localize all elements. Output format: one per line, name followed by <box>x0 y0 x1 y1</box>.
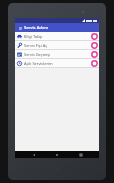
button[interactable]: Servis Geçmişi <box>15 50 99 58</box>
staticText: Bilgi Takip <box>24 34 91 39</box>
button[interactable]: Open navigation drawer <box>17 25 23 31</box>
button[interactable]: Home <box>52 151 62 158</box>
staticText: Açık Servislerim <box>24 61 91 66</box>
button[interactable]: Açık Servislerim <box>15 59 99 67</box>
staticText: Servis Adımı <box>24 25 48 31</box>
button[interactable]: Back <box>29 151 39 158</box>
button[interactable]: Recent apps <box>76 151 86 158</box>
staticText: Servis Geçmişi <box>24 52 91 57</box>
button[interactable]: Servis Fişi Aç <box>15 41 99 49</box>
button[interactable]: Bilgi Takip <box>15 32 99 40</box>
staticText: Servis Fişi Aç <box>24 43 91 48</box>
